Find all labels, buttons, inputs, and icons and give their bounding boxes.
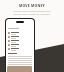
button[interactable] bbox=[6, 47, 34, 51]
button[interactable] bbox=[6, 31, 34, 35]
staticText: MOVE MONEY bbox=[19, 3, 45, 8]
button[interactable] bbox=[6, 39, 34, 43]
staticText: Transfer funds instantly between your ac… bbox=[13, 10, 51, 16]
button[interactable] bbox=[6, 43, 34, 47]
button[interactable] bbox=[6, 35, 34, 39]
button[interactable] bbox=[7, 66, 32, 72]
staticText: Accounts bbox=[8, 26, 19, 29]
other: Dynamic island bbox=[16, 21, 24, 23]
